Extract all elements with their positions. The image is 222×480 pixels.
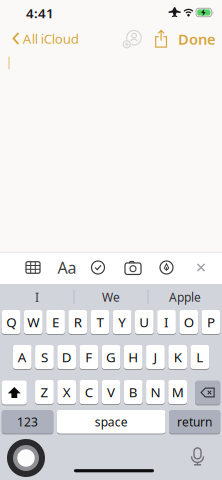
staticText: T bbox=[96, 313, 103, 331]
staticText: Q bbox=[6, 313, 16, 331]
button[interactable]: J bbox=[146, 345, 165, 370]
button[interactable]: Share bbox=[151, 28, 171, 50]
button[interactable]: return bbox=[169, 410, 220, 434]
staticText: R bbox=[74, 313, 82, 331]
staticText: 4:41 bbox=[26, 4, 54, 22]
button[interactable]: Done bbox=[174, 27, 220, 51]
staticText: G bbox=[106, 348, 116, 366]
staticText: S bbox=[41, 348, 48, 366]
button[interactable]: O bbox=[179, 310, 198, 335]
staticText: Done bbox=[178, 29, 216, 49]
staticText: N bbox=[150, 383, 160, 401]
button[interactable]: P bbox=[202, 310, 220, 335]
button[interactable]: Q bbox=[2, 310, 20, 335]
staticText: L bbox=[196, 348, 203, 366]
button[interactable]: W bbox=[24, 310, 43, 335]
button[interactable]: L bbox=[190, 345, 209, 370]
staticText: D bbox=[62, 348, 72, 366]
button[interactable]: We bbox=[75, 284, 147, 309]
button[interactable]: Delete bbox=[195, 380, 220, 405]
staticText: H bbox=[128, 348, 138, 366]
button[interactable]: I bbox=[157, 310, 176, 335]
button[interactable]: X bbox=[57, 380, 76, 405]
staticText: X bbox=[63, 383, 71, 401]
button[interactable]: D bbox=[57, 345, 76, 370]
button[interactable]: Shift bbox=[2, 380, 27, 405]
staticText: Apple bbox=[169, 289, 201, 305]
staticText: V bbox=[107, 383, 115, 401]
staticText: B bbox=[129, 383, 138, 401]
staticText: Y bbox=[118, 313, 126, 331]
button[interactable]: F bbox=[79, 345, 98, 370]
button[interactable]: Dictate bbox=[189, 447, 205, 467]
staticText: J bbox=[153, 348, 157, 366]
button[interactable]: All iCloud bbox=[2, 25, 88, 51]
staticText: O bbox=[184, 313, 194, 331]
button[interactable]: Camera bbox=[122, 257, 144, 277]
button[interactable]: Y bbox=[113, 310, 131, 335]
button[interactable]: Add People bbox=[119, 27, 145, 51]
staticText: space bbox=[95, 414, 128, 430]
button[interactable]: H bbox=[124, 345, 143, 370]
button[interactable]: Checklist bbox=[88, 257, 108, 277]
button[interactable]: Z bbox=[35, 380, 54, 405]
button[interactable]: Apple bbox=[149, 284, 221, 309]
button[interactable]: S bbox=[35, 345, 54, 370]
button[interactable]: Text Format bbox=[55, 257, 79, 277]
staticText: F bbox=[85, 348, 92, 366]
button[interactable]: K bbox=[168, 345, 187, 370]
button[interactable]: Dismiss Keyboard bbox=[192, 258, 210, 276]
button[interactable]: Insert Table bbox=[21, 257, 45, 277]
button[interactable]: Markup bbox=[156, 257, 176, 277]
button[interactable]: N bbox=[146, 380, 165, 405]
button[interactable]: space bbox=[57, 410, 165, 434]
button[interactable]: T bbox=[91, 310, 109, 335]
staticText: P bbox=[207, 313, 215, 331]
staticText: C bbox=[85, 383, 93, 401]
staticText: Z bbox=[40, 383, 48, 401]
button[interactable]: R bbox=[68, 310, 87, 335]
staticText: E bbox=[52, 313, 59, 331]
button[interactable]: B bbox=[124, 380, 143, 405]
staticText: I bbox=[164, 313, 169, 331]
button[interactable]: V bbox=[102, 380, 120, 405]
button[interactable]: A bbox=[13, 345, 32, 370]
button[interactable]: C bbox=[79, 380, 98, 405]
button[interactable]: M bbox=[168, 380, 187, 405]
button[interactable]: G bbox=[102, 345, 120, 370]
button[interactable]: E bbox=[46, 310, 65, 335]
staticText: M bbox=[172, 383, 184, 401]
staticText: I bbox=[35, 289, 39, 305]
staticText: All iCloud bbox=[23, 30, 79, 47]
staticText: A bbox=[18, 348, 27, 366]
button[interactable]: 123 bbox=[2, 410, 53, 434]
button[interactable]: U bbox=[135, 310, 154, 335]
staticText: 123 bbox=[17, 414, 38, 430]
staticText: K bbox=[174, 348, 182, 366]
staticText: Aa bbox=[57, 257, 76, 278]
staticText: return bbox=[177, 414, 212, 430]
button[interactable]: Emoji bbox=[7, 439, 45, 477]
button[interactable]: I bbox=[1, 284, 73, 309]
staticText: W bbox=[27, 313, 39, 331]
staticText: U bbox=[139, 313, 149, 331]
staticText: We bbox=[102, 289, 120, 305]
